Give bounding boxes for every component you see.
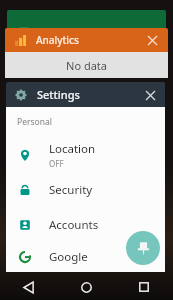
button[interactable]: Location [6, 137, 165, 172]
button[interactable]: Accounts [6, 207, 165, 242]
button[interactable]: Back [0, 274, 57, 300]
staticText: Settings [37, 87, 80, 102]
button[interactable]: Settings [6, 82, 165, 107]
button[interactable]: Analytics [5, 28, 168, 52]
button[interactable]: Pin app [126, 231, 160, 265]
staticText: Google [49, 249, 88, 265]
button[interactable]: Google [6, 242, 165, 272]
button[interactable]: Close Analytics [140, 28, 164, 52]
staticText: Location [49, 141, 96, 157]
button[interactable]: Close Settings [138, 83, 162, 107]
staticText: No data [66, 58, 107, 73]
button[interactable]: Home [57, 274, 115, 300]
button[interactable] [7, 10, 166, 34]
button[interactable]: Security [6, 172, 165, 207]
staticText: Personal [17, 116, 52, 128]
staticText: Security [49, 182, 93, 198]
staticText: Analytics [36, 33, 79, 47]
staticText: Accounts [49, 217, 99, 233]
button[interactable]: No data [5, 52, 168, 78]
button[interactable]: Recent apps [115, 274, 173, 300]
staticText: OFF [49, 158, 64, 169]
